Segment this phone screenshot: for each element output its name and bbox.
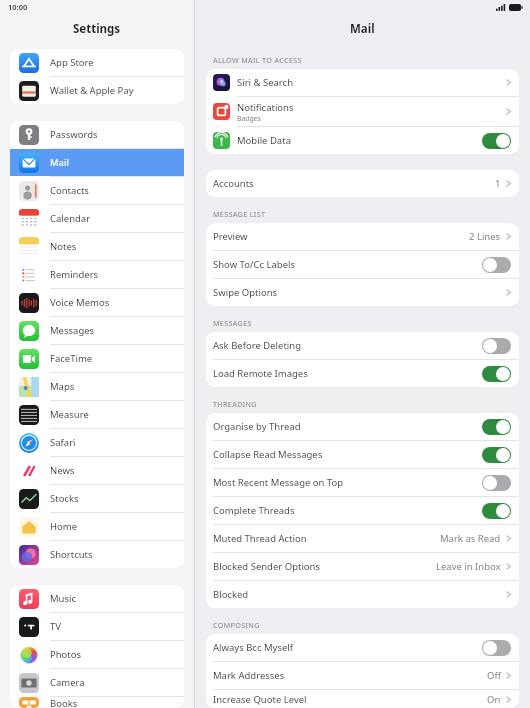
button[interactable]: Photos (10, 641, 184, 668)
button[interactable]: Measure (10, 401, 184, 428)
staticText: TV (50, 620, 61, 633)
staticText: Notes (50, 240, 77, 253)
button[interactable]: News (10, 457, 184, 484)
other: More (506, 562, 511, 571)
button[interactable]: TV (10, 613, 184, 640)
other: More (506, 107, 511, 116)
staticText: Mobile Data (237, 134, 291, 147)
button[interactable]: Toggle on (482, 447, 511, 463)
other: More (506, 288, 511, 297)
button[interactable]: Accounts (206, 170, 519, 197)
button[interactable]: Voice Memos (10, 289, 184, 316)
staticText: Accounts (213, 177, 254, 190)
button[interactable]: Books (10, 697, 184, 708)
button[interactable]: Toggle on (482, 366, 511, 382)
staticText: Wallet & Apple Pay (50, 84, 134, 97)
staticText: Ask Before Deleting (213, 339, 301, 352)
staticText: Most Recent Message on Top (213, 476, 344, 489)
staticText: Blocked (213, 588, 249, 601)
button[interactable]: Preview (206, 223, 519, 250)
button[interactable]: Safari (10, 429, 184, 456)
staticText: Always Bcc Myself (213, 641, 294, 654)
staticText: MESSAGE LIST (213, 209, 266, 219)
staticText: 10:00 (8, 2, 28, 12)
button[interactable]: Camera (10, 669, 184, 696)
button[interactable]: Toggle off (482, 257, 511, 273)
staticText: FaceTime (50, 352, 93, 365)
staticText: Badges (237, 114, 261, 123)
button[interactable]: Collapse Read Messages (206, 441, 519, 468)
button[interactable]: Muted Thread Action (206, 525, 519, 552)
staticText: Show To/Cc Labels (213, 258, 296, 271)
staticText: Maps (50, 380, 75, 393)
button[interactable]: Organise by Thread (206, 413, 519, 440)
staticText: COMPOSING (213, 620, 260, 630)
staticText: Passwords (50, 128, 98, 141)
staticText: Stocks (50, 492, 79, 505)
button[interactable]: Mail (10, 149, 184, 176)
button[interactable]: Notes (10, 233, 184, 260)
button[interactable]: Shortcuts (10, 541, 184, 568)
staticText: Mark as Read (440, 532, 501, 545)
button[interactable]: Blocked Sender Options (206, 553, 519, 580)
button[interactable]: App Store (10, 49, 184, 76)
button[interactable]: Mark Addresses (206, 662, 519, 689)
button[interactable]: Notifications (206, 97, 519, 126)
staticText: Measure (50, 408, 89, 421)
button[interactable]: Messages (10, 317, 184, 344)
other: More (506, 695, 511, 704)
button[interactable]: Mobile Data (206, 127, 519, 154)
button[interactable]: Passwords (10, 121, 184, 148)
button[interactable]: Home (10, 513, 184, 540)
staticText: Siri & Search (237, 76, 294, 89)
staticText: THREADING (213, 399, 257, 409)
button[interactable]: Music (10, 585, 184, 612)
staticText: Mail (350, 21, 375, 37)
staticText: Camera (50, 676, 85, 689)
button[interactable]: Toggle on (482, 419, 511, 435)
button[interactable]: Complete Threads (206, 497, 519, 524)
staticText: On (487, 693, 501, 706)
staticText: Music (50, 592, 77, 605)
button[interactable]: Swipe Options (206, 279, 519, 306)
button[interactable]: Siri & Search (206, 69, 519, 96)
staticText: Notifications (237, 101, 294, 114)
button[interactable]: Toggle off (482, 640, 511, 656)
button[interactable]: Contacts (10, 177, 184, 204)
staticText: Muted Thread Action (213, 532, 307, 545)
staticText: Leave in Inbox (436, 560, 501, 573)
button[interactable]: Show To/Cc Labels (206, 251, 519, 278)
other: More (506, 534, 511, 543)
staticText: Messages (50, 324, 95, 337)
staticText: Mail (50, 156, 69, 169)
staticText: Complete Threads (213, 504, 295, 517)
button[interactable]: Ask Before Deleting (206, 332, 519, 359)
button[interactable]: Toggle on (482, 133, 511, 149)
button[interactable]: Increase Quote Level (206, 690, 519, 708)
button[interactable]: Maps (10, 373, 184, 400)
staticText: Contacts (50, 184, 89, 197)
button[interactable]: Wallet & Apple Pay (10, 77, 184, 104)
other: More (506, 78, 511, 87)
other: More (506, 590, 511, 599)
button[interactable]: Load Remote Images (206, 360, 519, 387)
staticText: App Store (50, 56, 94, 69)
staticText: Settings (73, 21, 121, 37)
staticText: 2 Lines (469, 230, 501, 243)
button[interactable]: Reminders (10, 261, 184, 288)
staticText: Photos (50, 648, 82, 661)
button[interactable]: Calendar (10, 205, 184, 232)
button[interactable]: Most Recent Message on Top (206, 469, 519, 496)
button[interactable]: Blocked (206, 581, 519, 608)
staticText: Voice Memos (50, 296, 110, 309)
button[interactable]: Toggle off (482, 475, 511, 491)
button[interactable]: Stocks (10, 485, 184, 512)
staticText: Preview (213, 230, 248, 243)
button[interactable]: FaceTime (10, 345, 184, 372)
staticText: Shortcuts (50, 548, 93, 561)
staticText: Blocked Sender Options (213, 560, 321, 573)
button[interactable]: Toggle off (482, 338, 511, 354)
staticText: Safari (50, 436, 76, 449)
button[interactable]: Always Bcc Myself (206, 634, 519, 661)
button[interactable]: Toggle on (482, 503, 511, 519)
